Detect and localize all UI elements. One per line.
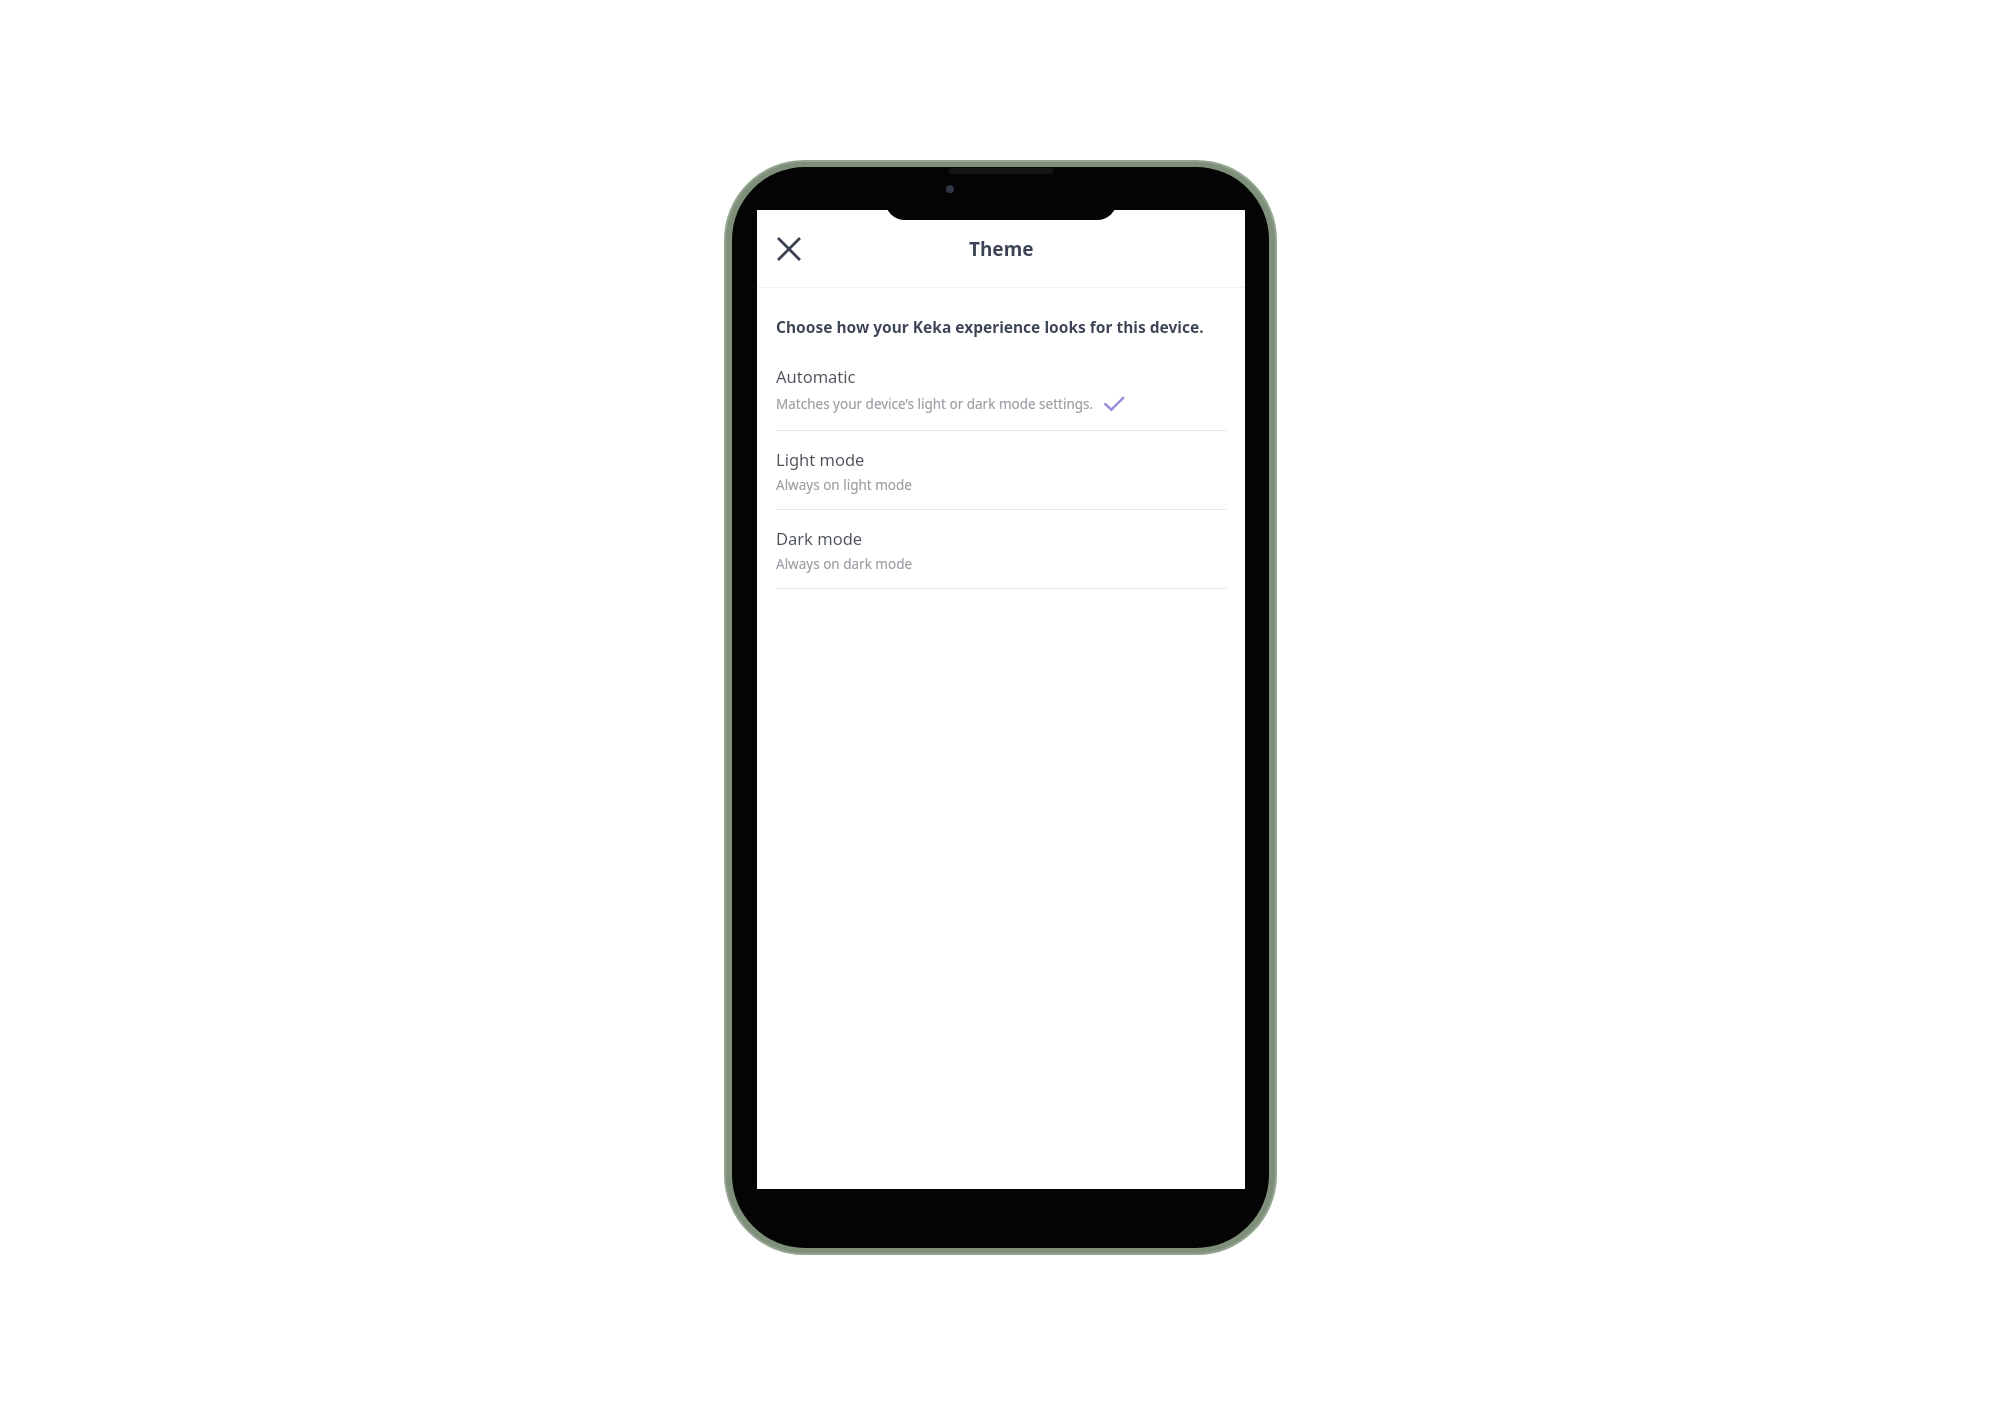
staticText: Always on light mode	[776, 476, 912, 494]
button[interactable]: Dark mode	[757, 527, 1245, 606]
staticText: Light mode	[776, 448, 865, 470]
staticText: Dark mode	[776, 527, 863, 549]
staticText: Theme	[969, 236, 1034, 262]
staticText: Always on dark mode	[776, 555, 913, 573]
button[interactable]: Light mode	[757, 448, 1245, 527]
staticText: Choose how your Keka experience looks fo…	[776, 316, 1207, 337]
staticText: Automatic	[776, 365, 856, 387]
staticText: Matches your device’s light or dark mode…	[776, 395, 1094, 413]
button[interactable]: Automatic	[757, 365, 1245, 448]
button[interactable]: Close	[763, 223, 815, 275]
